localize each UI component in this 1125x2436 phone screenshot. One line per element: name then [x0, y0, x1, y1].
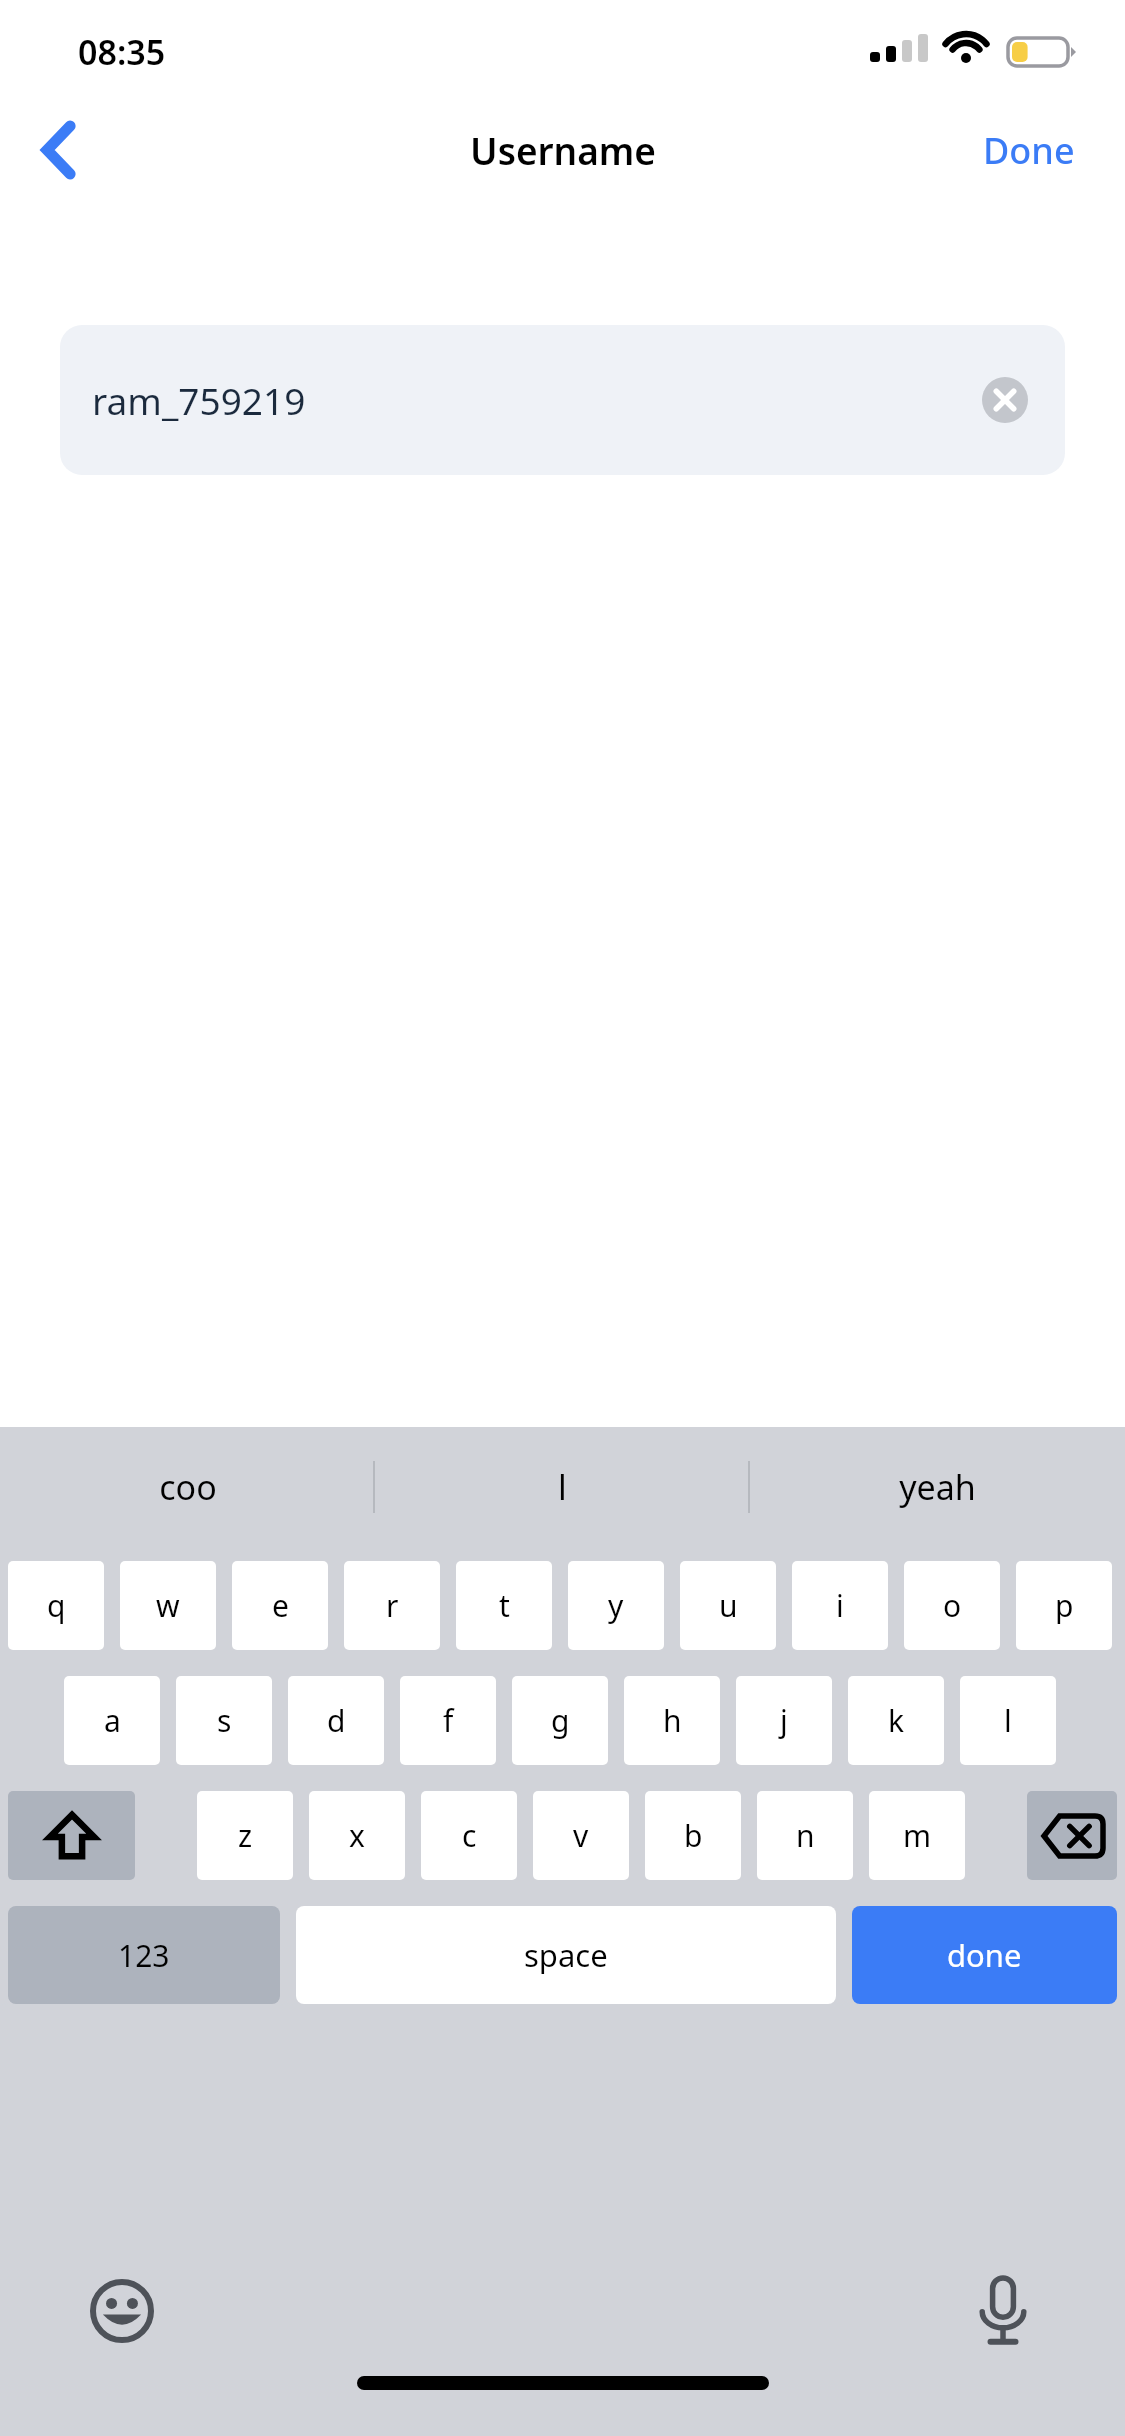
staticText: x	[349, 1815, 365, 1856]
staticText: 08:35	[78, 29, 166, 75]
staticText: e	[272, 1585, 289, 1626]
button[interactable]: Clear text	[975, 370, 1035, 430]
button[interactable]: w	[120, 1561, 216, 1650]
button[interactable]: n	[757, 1791, 853, 1880]
staticText: done	[947, 1934, 1022, 1976]
staticText: y	[608, 1585, 624, 1626]
button[interactable]: o	[904, 1561, 1000, 1650]
button[interactable]: y	[568, 1561, 664, 1650]
staticText: i	[836, 1585, 844, 1626]
staticText: coo	[159, 1464, 217, 1510]
button[interactable]: x	[309, 1791, 405, 1880]
staticText: space	[524, 1934, 608, 1976]
staticText: j	[780, 1700, 788, 1741]
staticText: g	[551, 1700, 570, 1741]
button[interactable]: done	[852, 1906, 1117, 2004]
button[interactable]: g	[512, 1676, 608, 1765]
staticText: d	[327, 1700, 346, 1741]
button[interactable]: b	[645, 1791, 741, 1880]
staticText: k	[888, 1700, 905, 1741]
button[interactable]: l	[375, 1427, 750, 1547]
staticText: 123	[118, 1935, 170, 1976]
button[interactable]: space	[296, 1906, 836, 2004]
button[interactable]: z	[197, 1791, 293, 1880]
staticText: b	[684, 1815, 703, 1856]
button[interactable]: Backspace	[1027, 1791, 1117, 1880]
button[interactable]: i	[792, 1561, 888, 1650]
staticText: c	[462, 1815, 477, 1856]
button[interactable]: r	[344, 1561, 440, 1650]
button[interactable]: Back	[0, 96, 120, 204]
staticText: m	[903, 1815, 932, 1856]
button[interactable]: d	[288, 1676, 384, 1765]
button[interactable]: Emoji	[80, 2269, 164, 2353]
button[interactable]: yeah	[750, 1427, 1125, 1547]
button[interactable]: coo	[0, 1427, 375, 1547]
button[interactable]: q	[8, 1561, 104, 1650]
button[interactable]: u	[680, 1561, 776, 1650]
button[interactable]: p	[1016, 1561, 1112, 1650]
button[interactable]: c	[421, 1791, 517, 1880]
staticText: yeah	[899, 1464, 976, 1510]
button[interactable]: l	[960, 1676, 1056, 1765]
staticText: Done	[983, 126, 1075, 175]
staticText: p	[1055, 1585, 1074, 1626]
staticText: w	[156, 1585, 180, 1626]
button[interactable]: a	[64, 1676, 160, 1765]
staticText: h	[663, 1700, 682, 1741]
staticText: l	[1004, 1700, 1012, 1741]
button[interactable]: 123	[8, 1906, 280, 2004]
staticText: l	[558, 1464, 567, 1510]
button[interactable]: v	[533, 1791, 629, 1880]
button[interactable]: Shift	[8, 1791, 135, 1880]
staticText: u	[719, 1585, 738, 1626]
staticText: z	[238, 1815, 253, 1856]
button[interactable]: t	[456, 1561, 552, 1650]
button[interactable]: Dictation	[961, 2269, 1045, 2353]
button[interactable]: ram_759219	[60, 325, 1065, 475]
staticText: Username	[470, 125, 656, 175]
staticText: q	[47, 1585, 66, 1626]
staticText: o	[943, 1585, 962, 1626]
staticText: n	[796, 1815, 815, 1856]
button[interactable]: k	[848, 1676, 944, 1765]
button[interactable]: Done	[983, 126, 1075, 175]
button[interactable]: h	[624, 1676, 720, 1765]
staticText: r	[386, 1585, 399, 1626]
staticText: ram_759219	[92, 375, 306, 425]
button[interactable]: s	[176, 1676, 272, 1765]
button[interactable]: f	[400, 1676, 496, 1765]
button[interactable]: m	[869, 1791, 965, 1880]
staticText: f	[443, 1700, 454, 1741]
staticText: s	[217, 1700, 232, 1741]
button[interactable]: e	[232, 1561, 328, 1650]
button[interactable]: j	[736, 1676, 832, 1765]
staticText: v	[573, 1815, 589, 1856]
staticText: t	[499, 1585, 510, 1626]
staticText: a	[104, 1700, 121, 1741]
